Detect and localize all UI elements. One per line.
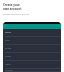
button[interactable]: Trash: [3, 61, 61, 69]
button[interactable]: Sent: [3, 37, 61, 45]
staticText: Sent: [5, 39, 10, 42]
staticText: Trash: [5, 63, 11, 66]
staticText: Inbox: [5, 31, 11, 34]
button[interactable]: Spam: [3, 53, 61, 61]
staticText: It takes less than a minute: [3, 13, 29, 16]
button[interactable]: Drafts: [3, 45, 61, 53]
staticText: Spam: [5, 55, 11, 58]
staticText: Create your own account: [3, 3, 22, 11]
button[interactable]: Archive: [3, 69, 61, 72]
staticText: Archive: [5, 69, 13, 72]
staticText: Drafts: [5, 47, 12, 50]
button[interactable]: Inbox: [3, 29, 61, 37]
